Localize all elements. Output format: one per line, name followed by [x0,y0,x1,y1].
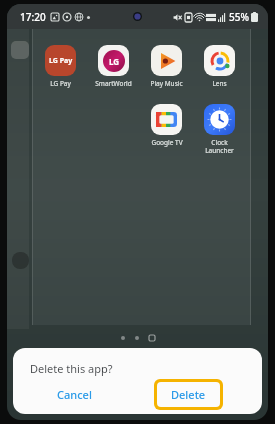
staticText: Cancel [57,387,92,402]
button[interactable]: LG Pay [37,45,84,88]
button[interactable]: Play Music [143,45,190,88]
staticText: Delete this app? [30,361,113,376]
staticText: Delete [171,387,206,402]
staticText: Lens [212,79,227,88]
staticText: SmartWorld [95,79,132,88]
staticText: Google TV [151,138,183,147]
button[interactable]: Delete [154,379,223,410]
staticText: Play Music [150,79,183,88]
staticText: LG Pay [49,56,73,66]
button[interactable]: Clock Launcher [196,104,243,155]
button[interactable]: Google TV [143,104,190,147]
button[interactable]: LG [90,45,137,88]
staticText: LG [109,56,120,67]
staticText: Clock Launcher [205,138,234,155]
button[interactable]: Cancel [41,380,108,409]
button[interactable]: Lens [196,45,243,88]
staticText: 17:20 [20,10,46,24]
staticText: LG Pay [50,79,71,88]
staticText: 55% [229,10,249,24]
